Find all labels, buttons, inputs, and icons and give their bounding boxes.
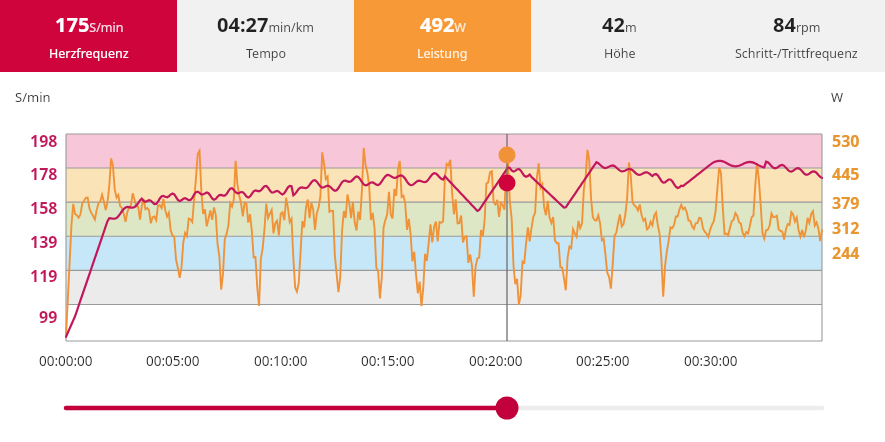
staticText: Höhe <box>604 45 636 62</box>
button[interactable]: 04:27min/km <box>177 0 354 72</box>
staticText: S/min <box>15 88 51 106</box>
staticText: Schritt-/Trittfrequenz <box>735 45 858 62</box>
staticText: 158 <box>30 197 58 219</box>
staticText: 42m <box>602 11 637 38</box>
staticText: 530 <box>832 130 860 152</box>
staticText: 00:20:00 <box>469 352 523 370</box>
staticText: 492W <box>420 11 466 38</box>
button[interactable]: Zeitposition <box>50 390 840 430</box>
staticText: Leistung <box>417 45 468 62</box>
staticText: 119 <box>30 265 58 287</box>
staticText: Herzfrequenz <box>49 45 129 62</box>
staticText: W <box>831 88 844 106</box>
staticText: 244 <box>832 242 860 264</box>
staticText: 175S/min <box>55 11 124 38</box>
staticText: 198 <box>30 130 58 152</box>
staticText: 00:00:00 <box>39 352 93 370</box>
staticText: 445 <box>832 163 860 185</box>
staticText: 00:25:00 <box>576 352 630 370</box>
button[interactable]: 175S/min <box>0 0 177 72</box>
button[interactable]: 84rpm <box>708 0 885 72</box>
staticText: 312 <box>832 217 860 239</box>
staticText: 00:10:00 <box>254 352 308 370</box>
staticText: 00:30:00 <box>684 352 738 370</box>
staticText: 379 <box>832 192 860 214</box>
staticText: 139 <box>30 231 58 253</box>
button[interactable]: 42m <box>531 0 708 72</box>
staticText: 00:15:00 <box>361 352 415 370</box>
staticText: 84rpm <box>773 11 821 38</box>
staticText: 178 <box>30 163 58 185</box>
staticText: 04:27min/km <box>217 11 315 38</box>
staticText: 99 <box>39 306 58 328</box>
button[interactable]: 492W <box>354 0 531 72</box>
staticText: 00:05:00 <box>146 352 200 370</box>
staticText: Tempo <box>246 45 287 62</box>
